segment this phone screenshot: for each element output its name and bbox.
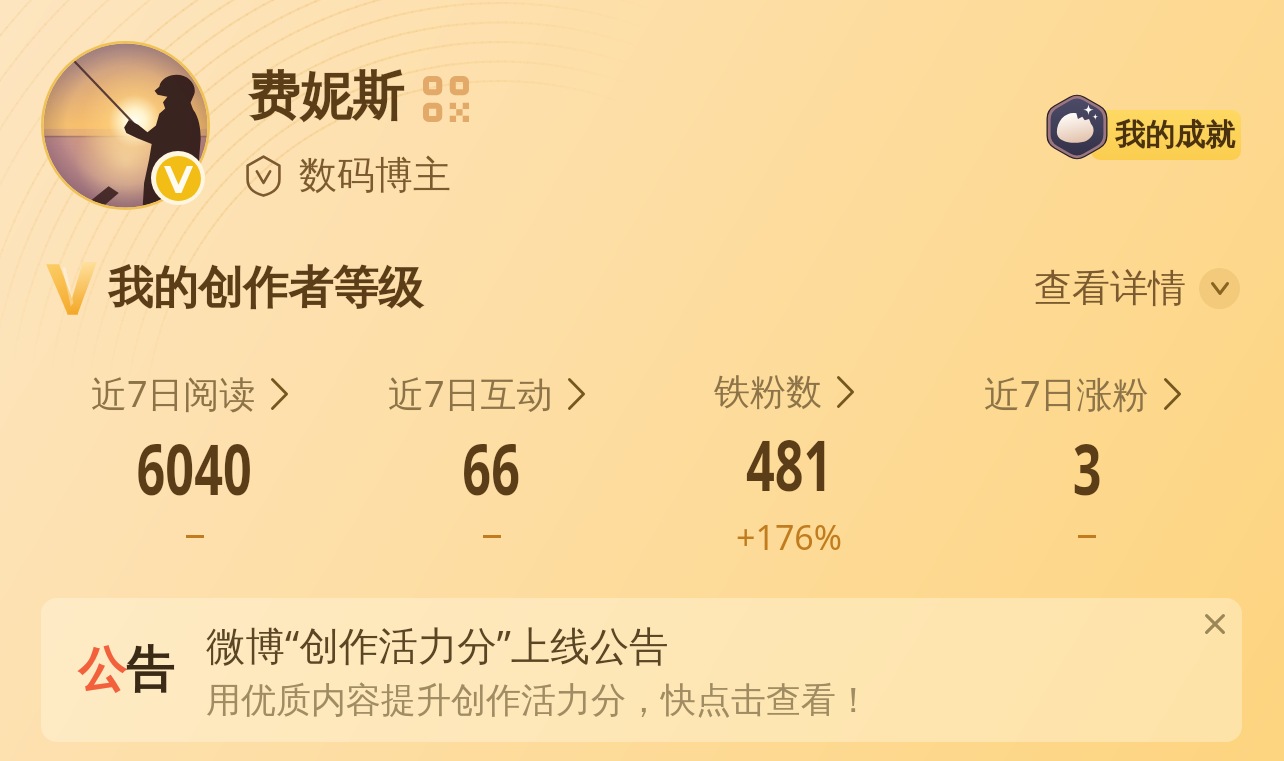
staticText: 公 xyxy=(78,640,126,700)
staticText: 3 xyxy=(1073,420,1102,515)
staticText: 铁粉数 xyxy=(714,369,822,414)
button[interactable]: 查看详情 xyxy=(1034,264,1240,312)
button[interactable]: 公 xyxy=(41,598,1242,742)
button[interactable]: 我的成就 xyxy=(1045,92,1241,164)
staticText: 我的成就 xyxy=(1115,116,1235,154)
staticText: +176% xyxy=(736,514,843,560)
button[interactable]: Close xyxy=(1190,599,1240,649)
staticText: 近7日互动 xyxy=(388,369,553,418)
staticText: 查看详情 xyxy=(1034,264,1186,312)
staticText: 6040 xyxy=(136,420,252,515)
staticText: 66 xyxy=(462,420,521,515)
staticText: 我的创作者等级 xyxy=(108,260,423,317)
button[interactable]: 近7日涨粉 xyxy=(933,369,1231,554)
staticText: 近7日涨粉 xyxy=(984,369,1149,418)
staticText: 近7日阅读 xyxy=(91,369,256,418)
button[interactable]: 近7日阅读 xyxy=(41,369,338,554)
staticText: 微博“创作活力分”上线公告 xyxy=(206,618,669,672)
staticText: 481 xyxy=(746,416,833,511)
button[interactable]: 近7日互动 xyxy=(338,369,635,554)
staticText: 费妮斯 xyxy=(248,64,404,130)
staticText: 数码博主 xyxy=(299,151,451,199)
button[interactable]: QR code xyxy=(423,76,469,122)
button[interactable]: 铁粉数 xyxy=(635,369,933,560)
staticText: 告 xyxy=(126,640,174,700)
staticText: 用优质内容提升创作活力分，快点击查看！ xyxy=(206,678,871,722)
